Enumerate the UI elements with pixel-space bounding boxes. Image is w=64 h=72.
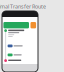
staticText: Optimal Transfer Route	[0, 3, 46, 10]
